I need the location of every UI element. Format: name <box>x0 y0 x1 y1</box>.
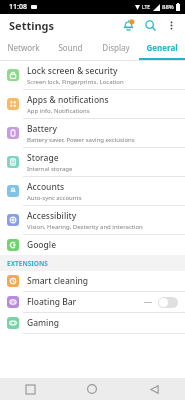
button[interactable]: Lock screen & security <box>0 61 185 89</box>
staticText: General <box>146 42 178 53</box>
button[interactable]: Back <box>123 378 185 400</box>
staticText: Lock screen & security <box>27 65 118 77</box>
button[interactable]: Apps & notifications <box>0 90 185 118</box>
button[interactable]: Network <box>0 36 47 58</box>
staticText: Storage <box>27 152 59 164</box>
staticText: App info, Notifications <box>27 107 90 115</box>
staticText: Auto-sync accounts <box>27 194 82 202</box>
staticText: Vision, Hearing, Dexterity and interacti… <box>27 223 143 231</box>
staticText: Battery <box>27 123 57 135</box>
staticText: Display <box>102 42 130 53</box>
button[interactable]: More options <box>161 15 181 35</box>
staticText: Internal storage <box>27 165 73 173</box>
staticText: Gaming <box>27 317 59 329</box>
staticText: Google <box>27 239 57 251</box>
button[interactable]: Smart cleaning <box>0 271 185 291</box>
staticText: Smart cleaning <box>27 275 89 287</box>
staticText: EXTENSIONS <box>7 259 48 268</box>
staticText: 11:08 <box>9 2 27 12</box>
button[interactable]: General <box>139 36 185 58</box>
staticText: Screen lock, Fingerprints, Location <box>27 78 124 86</box>
button[interactable]: Sound <box>47 36 93 58</box>
button[interactable]: Storage <box>0 148 185 176</box>
button[interactable]: Battery <box>0 119 185 147</box>
staticText: Floating Bar <box>27 296 77 308</box>
button[interactable]: Gaming <box>0 313 185 333</box>
button[interactable]: Accounts <box>0 177 185 205</box>
staticText: Sound <box>58 42 83 53</box>
button[interactable]: Accessibility <box>0 206 185 234</box>
button[interactable]: Home <box>61 378 123 400</box>
staticText: Apps & notifications <box>27 94 109 106</box>
staticText: Settings <box>9 18 55 33</box>
button[interactable]: Recents <box>0 378 61 400</box>
button[interactable]: Floating Bar toggle <box>158 297 178 308</box>
button[interactable]: Notifications <box>117 14 139 36</box>
staticText: LTE <box>142 4 151 11</box>
staticText: Accessibility <box>27 210 77 222</box>
button[interactable]: Search <box>139 14 161 36</box>
staticText: Accounts <box>27 181 65 193</box>
button[interactable]: Floating Bar <box>0 292 185 312</box>
button[interactable]: Display <box>93 36 139 58</box>
button[interactable]: Google <box>0 235 185 255</box>
staticText: 88% <box>162 3 174 11</box>
staticText: Network <box>7 42 40 53</box>
staticText: Battery saver, Power saving exclusions <box>27 136 135 144</box>
